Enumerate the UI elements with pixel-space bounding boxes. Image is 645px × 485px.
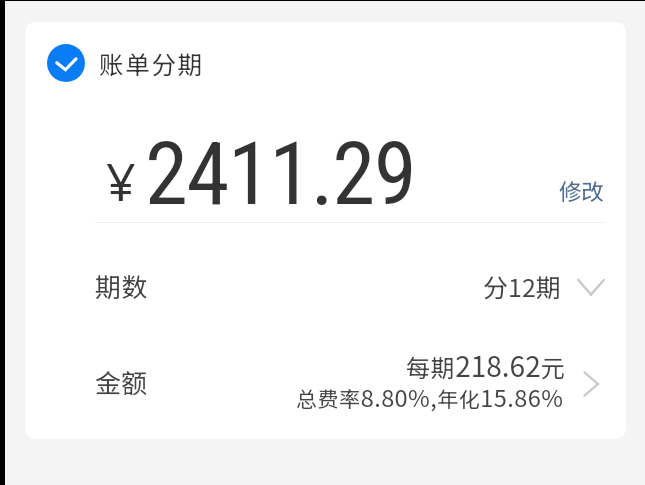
button[interactable]: 金额 <box>25 335 626 429</box>
staticText: 分12期 <box>483 268 561 304</box>
staticText: 金额 <box>95 363 148 401</box>
staticText: 总费率8.80%,年化15.86% <box>296 380 564 414</box>
button[interactable]: 修改 <box>549 166 614 215</box>
button[interactable]: 账单分期 <box>47 44 204 82</box>
staticText: 2411.29 <box>145 123 416 225</box>
staticText: 修改 <box>559 174 604 207</box>
other: Details <box>578 366 608 402</box>
other: Expand <box>573 272 609 302</box>
staticText: 账单分期 <box>99 46 204 81</box>
staticText: 每期218.62元 <box>406 345 566 386</box>
staticText: ¥ <box>106 145 136 216</box>
button[interactable]: 期数 <box>25 241 626 331</box>
staticText: 期数 <box>95 267 148 305</box>
